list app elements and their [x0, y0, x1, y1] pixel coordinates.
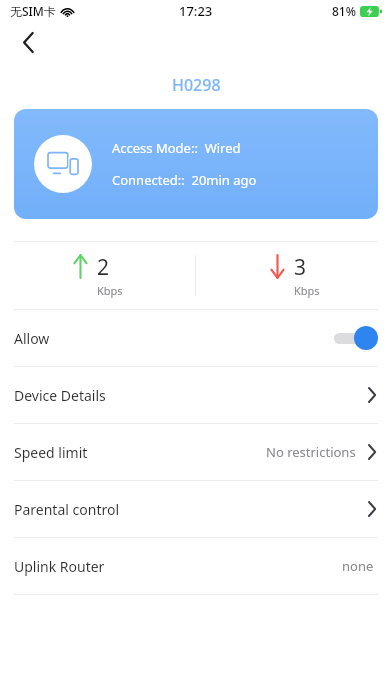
staticText: 81%: [332, 3, 356, 19]
staticText: Device Details: [14, 386, 106, 405]
button[interactable]: Uplink Router: [0, 538, 392, 594]
button[interactable]: Access Mode:: Wired: [14, 109, 378, 219]
staticText: Allow: [14, 329, 50, 348]
button[interactable]: Speed limit: [0, 424, 392, 480]
staticText: Uplink Router: [14, 557, 105, 576]
staticText: none: [342, 557, 374, 575]
staticText: No restrictions: [266, 443, 356, 461]
button[interactable]: Allow: [0, 310, 392, 366]
staticText: Access Mode:: Wired: [112, 139, 241, 157]
button[interactable]: Device Details: [0, 367, 392, 423]
staticText: 2: [97, 253, 110, 282]
other: Allow toggle: [332, 325, 378, 351]
button[interactable]: Parental control: [0, 481, 392, 537]
staticText: Speed limit: [14, 443, 88, 462]
staticText: Kbps: [294, 283, 320, 298]
button[interactable]: Back: [10, 24, 46, 60]
staticText: Connected:: 20min ago: [112, 171, 257, 189]
staticText: 17:23: [179, 2, 213, 20]
staticText: 3: [294, 253, 307, 282]
staticText: 无SIM卡: [10, 3, 56, 19]
staticText: H0298: [172, 74, 221, 96]
staticText: Parental control: [14, 500, 120, 519]
staticText: Kbps: [97, 283, 123, 298]
